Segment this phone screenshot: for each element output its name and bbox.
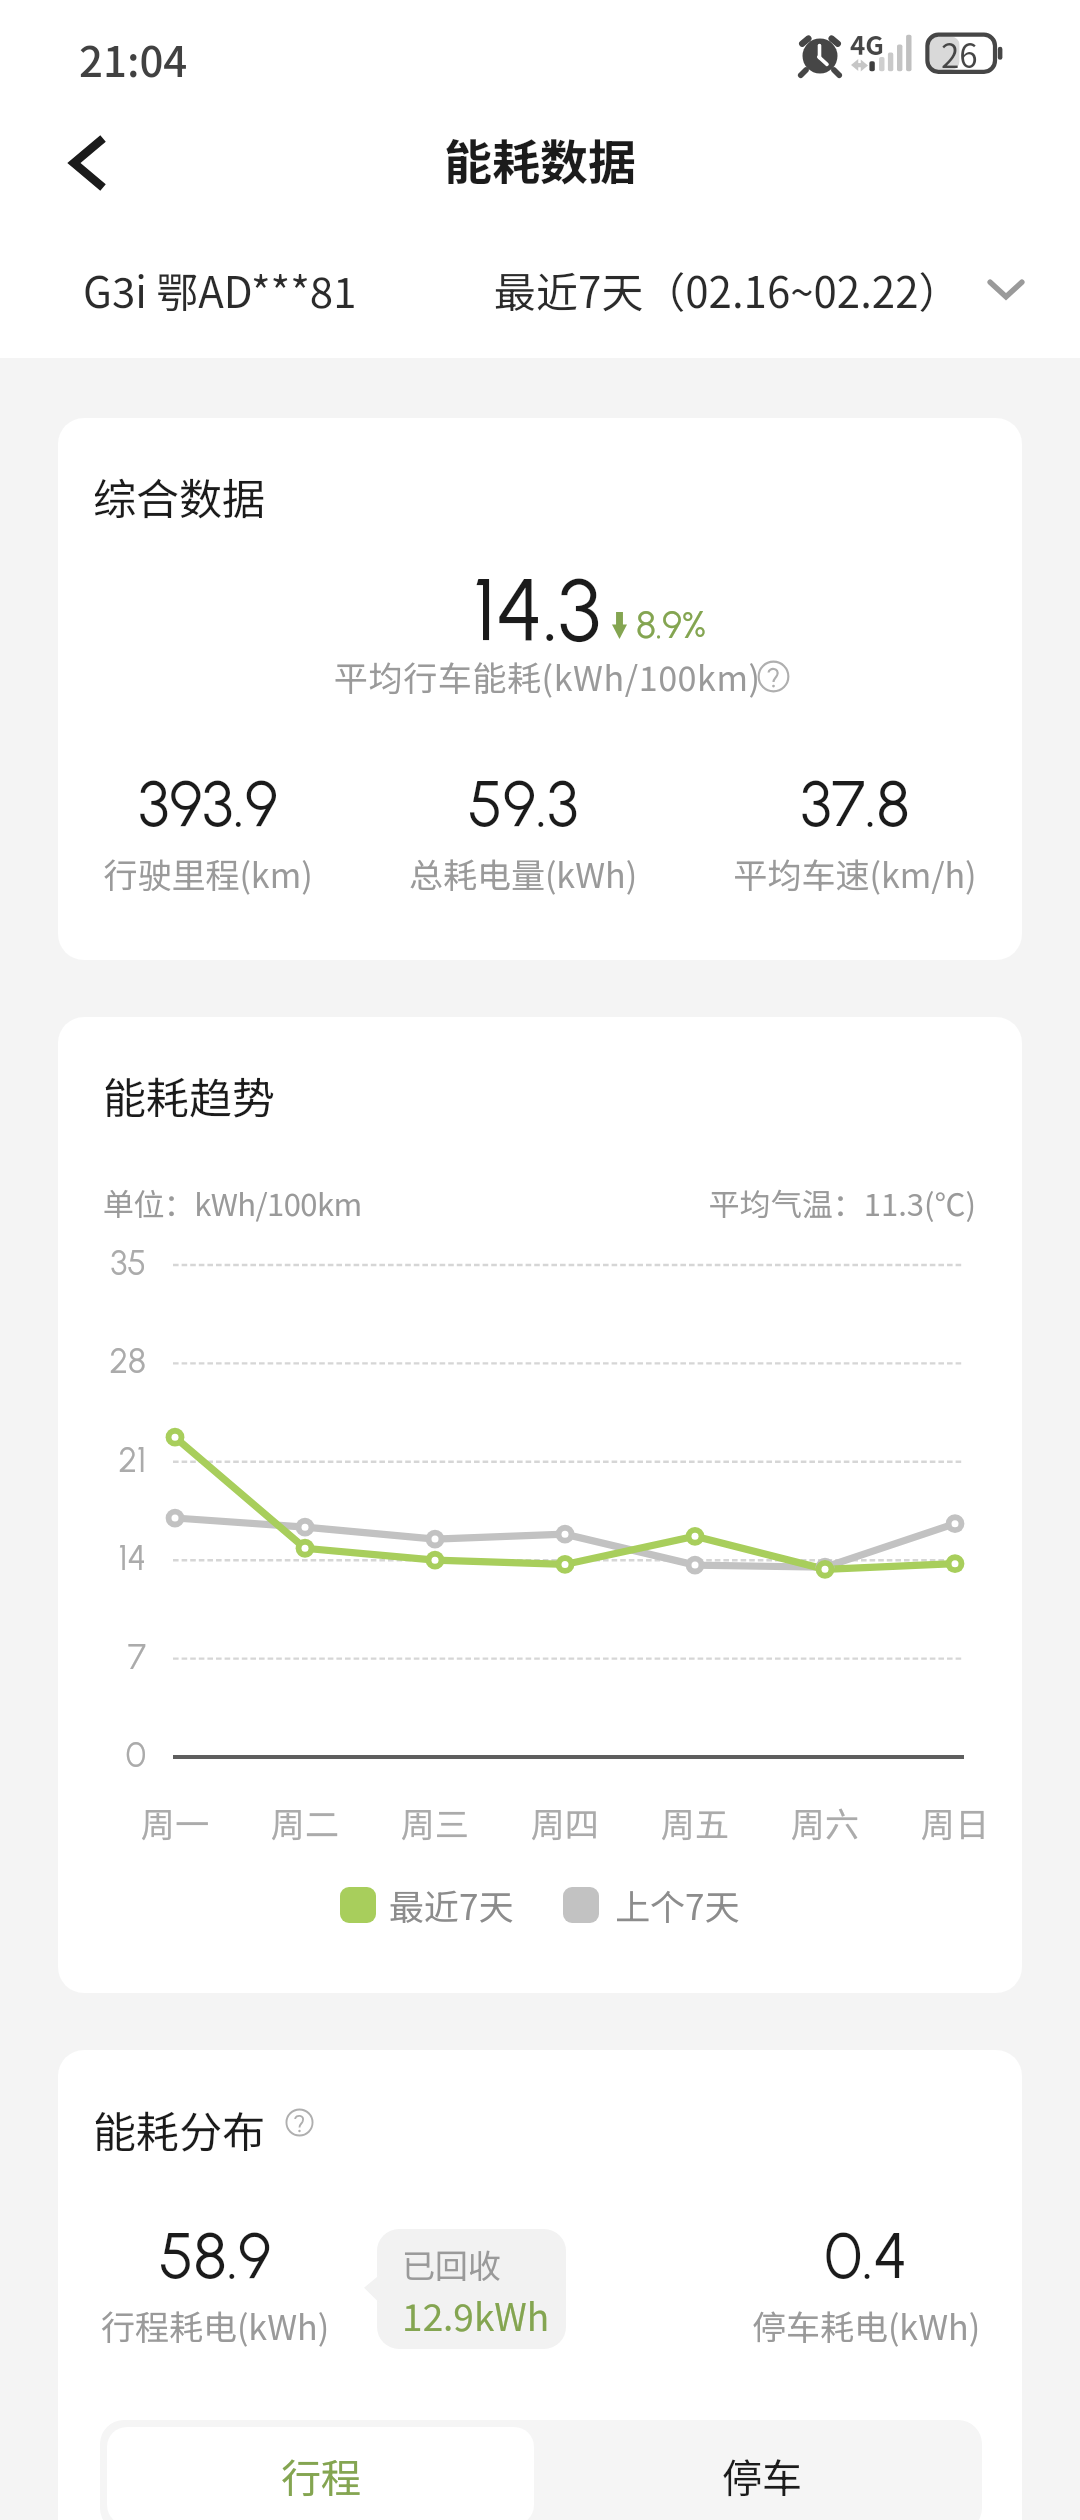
staticText: 周四: [495, 1798, 635, 1847]
button[interactable]: 行程: [107, 2427, 534, 2520]
staticText: 周二: [235, 1798, 375, 1847]
staticText: 行程: [281, 2447, 361, 2505]
staticText: 7: [58, 1637, 146, 1678]
staticText: 能耗分布: [93, 2098, 265, 2160]
button[interactable]: 最近7天（02.16~02.22）: [494, 259, 1024, 320]
staticText: 上个7天: [615, 1879, 740, 1930]
staticText: 14: [58, 1538, 146, 1579]
staticText: 平均车速(km/h): [685, 849, 1022, 898]
staticText: 行程耗电(kWh): [58, 2301, 385, 2350]
staticText: 393.9: [58, 766, 378, 842]
staticText: 综合数据: [93, 465, 265, 527]
staticText: 12.9kWh: [402, 2288, 550, 2342]
staticText: 26: [941, 30, 978, 78]
staticText: 59.3: [353, 766, 693, 842]
staticText: 能耗趋势: [103, 1064, 275, 1126]
staticText: 37.8: [685, 766, 1022, 842]
staticText: 0: [58, 1735, 146, 1776]
staticText: 已回收: [402, 2240, 501, 2288]
staticText: 14.3: [473, 557, 601, 661]
button[interactable]: 停车: [541, 2420, 982, 2520]
staticText: 周一: [105, 1798, 245, 1847]
staticText: 周六: [755, 1798, 895, 1847]
staticText: 能耗数据: [444, 124, 637, 194]
staticText: 35: [58, 1243, 146, 1284]
staticText: 58.9: [58, 2218, 385, 2294]
staticText: 行驶里程(km): [58, 849, 378, 898]
staticText: 最近7天（02.16~02.22）: [494, 259, 961, 320]
staticText: 21: [58, 1440, 146, 1481]
staticText: 停车: [722, 2447, 802, 2505]
button[interactable]: Back: [56, 131, 120, 195]
staticText: 周三: [365, 1798, 505, 1847]
staticText: 停车耗电(kWh): [696, 2301, 1022, 2350]
staticText: 8.9%: [636, 602, 706, 648]
staticText: G3i 鄂AD***81: [83, 259, 357, 320]
staticText: 单位：kWh/100km: [103, 1180, 362, 1225]
staticText: 周日: [885, 1798, 1022, 1847]
staticText: 21:04: [79, 28, 188, 89]
staticText: 28: [58, 1341, 146, 1382]
staticText: 总耗电量(kWh): [353, 849, 693, 898]
staticText: 4G: [850, 25, 884, 63]
staticText: 最近7天: [389, 1879, 514, 1930]
staticText: 平均气温：11.3(℃): [678, 1180, 976, 1225]
staticText: 周五: [625, 1798, 765, 1847]
staticText: 0.4: [696, 2218, 1022, 2294]
staticText: 平均行车能耗(kWh/100km): [334, 652, 761, 701]
